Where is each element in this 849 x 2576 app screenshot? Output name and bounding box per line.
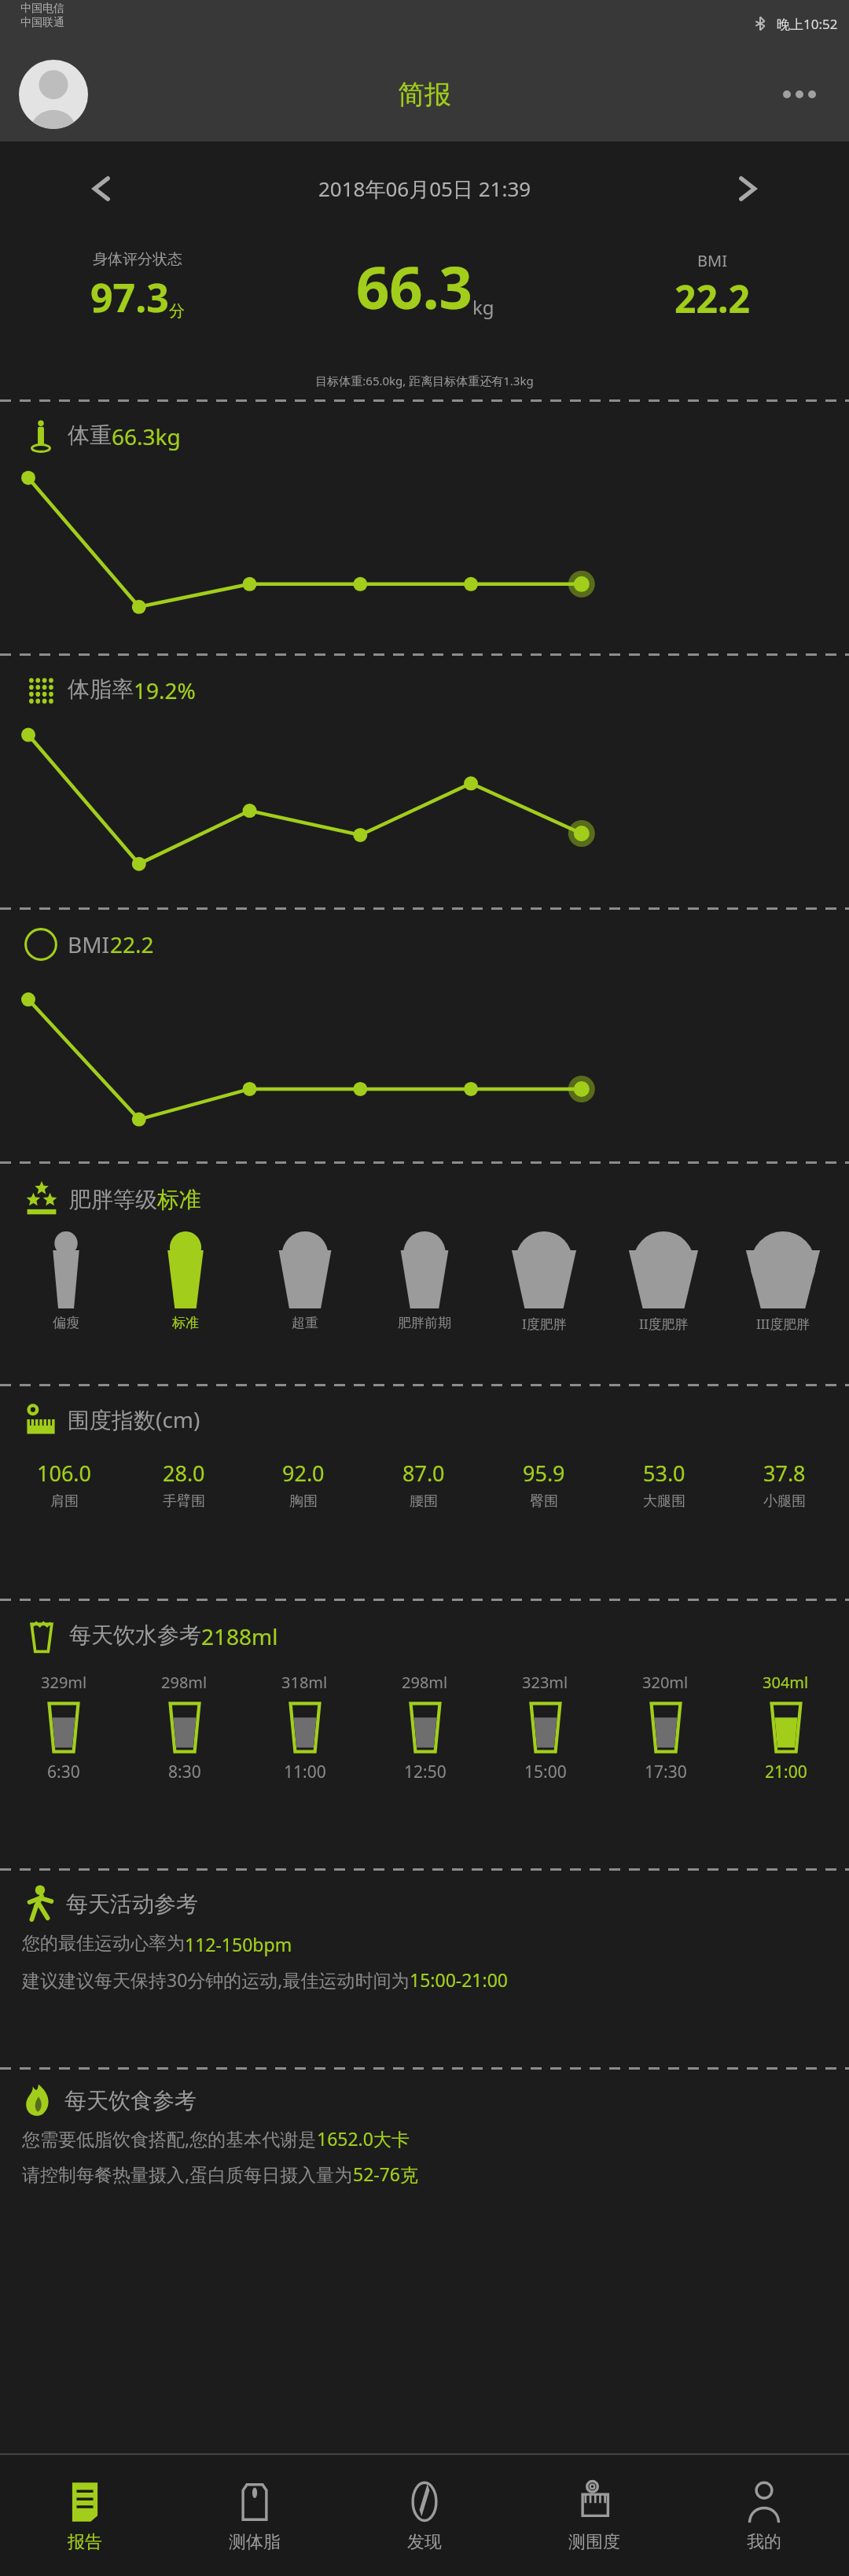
staticText: 每天饮食参考 [64, 2087, 197, 2114]
staticText: 52-76克 [353, 2162, 419, 2186]
staticText: 晚上10:52 [777, 15, 838, 33]
button[interactable]: 报告 [0, 2455, 170, 2576]
button[interactable]: 298ml [365, 1672, 485, 1783]
staticText: 测体脂 [229, 2531, 281, 2553]
button[interactable]: 偏瘦 [6, 1230, 126, 1331]
button[interactable]: 329ml [3, 1672, 124, 1783]
staticText: 87.0 [402, 1459, 445, 1488]
staticText: 手臂围 [163, 1492, 205, 1511]
button[interactable]: 323ml [485, 1672, 605, 1783]
button[interactable]: Next day [723, 165, 770, 212]
staticText: 318ml [281, 1672, 328, 1693]
button[interactable]: 体脂率 [0, 656, 849, 907]
staticText: 329ml [41, 1672, 87, 1693]
staticText: 298ml [402, 1672, 448, 1693]
button[interactable]: 每天饮水参考 [0, 1601, 849, 1868]
staticText: 您需要低脂饮食搭配,您的基本代谢是 [22, 2126, 317, 2151]
button[interactable]: 测围度 [509, 2455, 679, 2576]
button[interactable]: 106.0 [5, 1459, 124, 1511]
staticText: 19.2% [134, 675, 196, 705]
button[interactable]: III度肥胖 [723, 1230, 843, 1333]
staticText: 15:00 [524, 1761, 567, 1783]
staticText: 标准 [172, 1315, 199, 1331]
button[interactable]: II度肥胖 [604, 1230, 723, 1333]
button[interactable]: Profile [19, 60, 88, 129]
staticText: 106.0 [37, 1459, 92, 1488]
button[interactable]: 超重 [245, 1230, 365, 1331]
staticText: 测围度 [568, 2531, 620, 2553]
button[interactable]: 318ml [244, 1672, 365, 1783]
staticText: 超重 [292, 1315, 318, 1331]
staticText: 围度指数(cm) [68, 1404, 200, 1434]
button[interactable]: 每天饮食参考 [0, 2070, 849, 2250]
staticText: 分 [169, 301, 185, 321]
button[interactable]: 320ml [605, 1672, 726, 1783]
staticText: 37.8 [763, 1459, 806, 1488]
button[interactable]: 肥胖前期 [365, 1230, 484, 1331]
staticText: BMI [697, 250, 727, 271]
staticText: 17:30 [645, 1761, 687, 1783]
staticText: 简报 [398, 78, 451, 112]
button[interactable]: 我的 [679, 2455, 849, 2576]
staticText: 小腿围 [763, 1492, 806, 1511]
button[interactable]: 298ml [124, 1672, 244, 1783]
button[interactable]: 肥胖等级 [0, 1164, 849, 1384]
button[interactable]: 标准 [126, 1230, 245, 1331]
staticText: 66.3 [356, 247, 472, 326]
button[interactable]: 28.0 [124, 1459, 244, 1511]
staticText: 大腿围 [643, 1492, 685, 1511]
staticText: 体脂率 [68, 675, 134, 703]
staticText: 我的 [747, 2531, 781, 2553]
staticText: 53.0 [643, 1459, 685, 1488]
staticText: 2018年06月05日 21:39 [318, 175, 531, 203]
button[interactable]: 87.0 [363, 1459, 483, 1511]
staticText: 323ml [522, 1672, 568, 1693]
button[interactable]: BMI [0, 910, 849, 1161]
button[interactable]: 53.0 [604, 1459, 724, 1511]
button[interactable]: 发现 [340, 2455, 509, 2576]
staticText: 15:00-21:00 [410, 1967, 508, 1992]
button[interactable]: 每天活动参考 [0, 1871, 849, 2067]
staticText: 11:00 [284, 1761, 326, 1783]
staticText: kg [472, 294, 494, 320]
staticText: 66.3kg [112, 421, 181, 451]
staticText: 28.0 [163, 1459, 205, 1488]
staticText: 320ml [642, 1672, 689, 1693]
staticText: 身体评分状态 [93, 250, 182, 269]
staticText: 建议建议每天保持30分钟的运动,最佳运动时间为 [22, 1967, 410, 1992]
button[interactable]: More options [777, 84, 822, 105]
staticText: 每天活动参考 [66, 1890, 198, 1918]
staticText: III度肥胖 [756, 1315, 810, 1333]
button[interactable]: 体重 [0, 402, 849, 653]
staticText: 95.9 [523, 1459, 565, 1488]
staticText: 您的最佳运动心率为 [22, 1932, 185, 1955]
staticText: 偏瘦 [53, 1315, 79, 1331]
staticText: 12:50 [404, 1761, 447, 1783]
staticText: 中国联通 [20, 16, 64, 30]
staticText: 每天饮水参考 [69, 1621, 201, 1649]
staticText: 中国电信 [20, 2, 64, 16]
button[interactable]: Previous day [79, 165, 126, 212]
staticText: 标准 [157, 1186, 201, 1213]
staticText: 304ml [763, 1672, 809, 1693]
staticText: 臀围 [530, 1492, 558, 1511]
staticText: 22.2 [674, 273, 750, 324]
staticText: 发现 [407, 2531, 442, 2553]
staticText: 112-150bpm [185, 1932, 292, 1956]
staticText: 97.3 [90, 270, 169, 324]
staticText: 1652.0大卡 [317, 2126, 410, 2151]
button[interactable]: 围度指数(cm) [0, 1386, 849, 1599]
button[interactable]: I度肥胖 [484, 1230, 604, 1333]
staticText: 6:30 [47, 1761, 80, 1783]
button[interactable]: 测体脂 [170, 2455, 340, 2576]
button[interactable]: 92.0 [244, 1459, 363, 1511]
staticText: 肩围 [50, 1492, 79, 1511]
button[interactable]: 304ml [726, 1672, 846, 1783]
staticText: 胸围 [289, 1492, 318, 1511]
staticText: 报告 [68, 2531, 102, 2553]
staticText: 体重 [68, 421, 112, 449]
staticText: 92.0 [282, 1459, 325, 1488]
button[interactable]: 95.9 [483, 1459, 604, 1511]
staticText: 21:00 [765, 1761, 807, 1783]
button[interactable]: 37.8 [724, 1459, 844, 1511]
